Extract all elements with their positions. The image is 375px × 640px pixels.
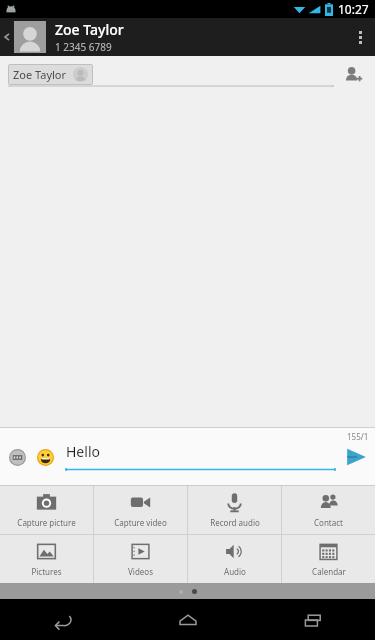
staticText: Videos [128, 566, 153, 577]
staticText: Capture picture [17, 517, 76, 528]
staticText: Pictures [31, 566, 62, 577]
button[interactable]: Contact [282, 486, 375, 534]
staticText: Calendar [312, 566, 346, 577]
button[interactable]: Insert emoji [32, 444, 58, 470]
button[interactable]: Zoe Taylor [55, 18, 345, 56]
button[interactable]: Pictures [0, 535, 93, 583]
button[interactable]: Recent apps [250, 599, 375, 640]
staticText: Zoe Taylor [13, 67, 67, 82]
button[interactable]: Switch keyboard [4, 444, 30, 470]
staticText: Zoe Taylor [55, 20, 124, 39]
button[interactable]: Add recipient [339, 60, 367, 88]
button[interactable]: Audio [188, 535, 281, 583]
button[interactable]: Capture video [94, 486, 187, 534]
button[interactable]: Zoe Taylor [8, 64, 93, 85]
button[interactable]: Home [125, 599, 250, 640]
button[interactable]: More options [345, 18, 375, 56]
button[interactable]: Videos [94, 535, 187, 583]
button[interactable]: Send message [341, 442, 371, 472]
button[interactable]: Calendar [282, 535, 375, 583]
button[interactable]: Navigate up [0, 18, 46, 56]
staticText: 155/1 [347, 431, 369, 442]
staticText: 1 2345 6789 [55, 40, 112, 54]
staticText: Capture video [114, 517, 167, 528]
button[interactable]: Back [0, 599, 125, 640]
staticText: Audio [224, 566, 246, 577]
staticText: Record audio [210, 517, 260, 528]
staticText: Contact [314, 517, 343, 528]
button[interactable]: Capture picture [0, 486, 93, 534]
staticText: 10:27 [338, 1, 369, 17]
staticText: Hello [66, 442, 100, 461]
button[interactable]: Record audio [188, 486, 281, 534]
